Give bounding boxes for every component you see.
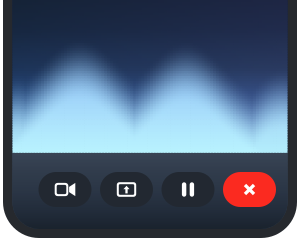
button[interactable]: End Call <box>223 172 276 207</box>
button[interactable]: Share Screen <box>100 172 153 207</box>
button[interactable]: Pause <box>161 172 214 207</box>
button[interactable]: Camera <box>38 172 91 207</box>
